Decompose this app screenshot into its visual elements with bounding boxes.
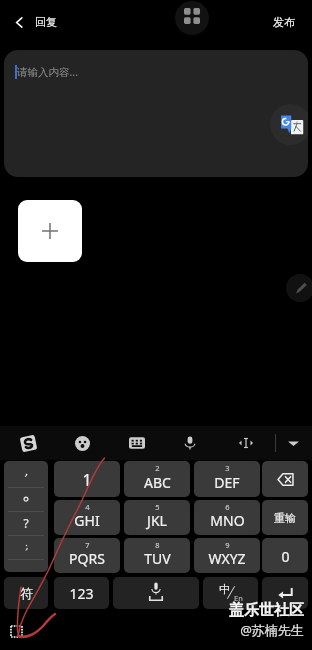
staticText: DEF <box>214 473 240 492</box>
button[interactable]: 4 <box>54 500 120 535</box>
button[interactable]: 3 <box>194 461 260 497</box>
button[interactable]: Hide keyboard <box>276 426 310 460</box>
staticText: 8 <box>155 540 160 550</box>
staticText: TUV <box>144 549 171 568</box>
button[interactable]: 9 <box>194 538 260 573</box>
staticText: PQRS <box>69 549 105 568</box>
button[interactable]: Enter <box>262 577 308 609</box>
staticText: GHI <box>74 511 100 530</box>
button[interactable]: 发布 <box>257 7 312 37</box>
staticText: 0 <box>281 547 290 566</box>
staticText: WXYZ <box>208 549 246 568</box>
staticText: En <box>234 593 243 603</box>
staticText: 发布 <box>273 15 295 29</box>
staticText: JKL <box>147 511 167 530</box>
button[interactable]: 2 <box>124 461 190 497</box>
button[interactable]: Sogou input <box>11 426 45 460</box>
button[interactable]: Emoji <box>65 426 99 460</box>
button[interactable]: Keyboard <box>120 426 154 460</box>
staticText: 7 <box>85 540 90 550</box>
button[interactable]: 6 <box>194 500 260 535</box>
staticText: ? <box>23 515 29 531</box>
staticText: 重输 <box>274 511 296 525</box>
staticText: 中 <box>219 582 230 596</box>
button[interactable]: 中 <box>203 577 258 609</box>
button[interactable]: 5 <box>124 500 190 535</box>
button[interactable]: Backspace <box>262 461 308 497</box>
button[interactable]: Add image <box>18 200 82 262</box>
button[interactable]: ? <box>4 461 48 572</box>
button[interactable]: 回复 <box>0 9 67 35</box>
button[interactable]: 8 <box>124 538 190 573</box>
button[interactable]: 符 <box>4 577 48 609</box>
staticText: 2 <box>155 463 160 473</box>
staticText: 盖乐世社区 <box>229 601 304 620</box>
staticText: 123 <box>69 584 94 603</box>
button[interactable]: Edit <box>286 274 312 302</box>
button[interactable]: 123 <box>54 577 109 609</box>
staticText: 4 <box>85 502 90 512</box>
staticText: MNO <box>210 511 245 530</box>
button[interactable]: 1 <box>54 461 120 497</box>
button[interactable]: Voice input <box>173 426 207 460</box>
button[interactable]: Translate <box>270 104 308 145</box>
button[interactable]: 重输 <box>262 500 308 535</box>
button[interactable]: 7 <box>54 538 120 573</box>
staticText: 回复 <box>35 15 57 29</box>
staticText: 5 <box>155 502 160 512</box>
button[interactable]: Apps <box>175 1 209 35</box>
staticText: 6 <box>225 502 230 512</box>
staticText: 1 <box>82 469 92 491</box>
staticText: @苏楠先生 <box>240 621 304 639</box>
button[interactable]: 请输入内容... <box>4 50 308 177</box>
staticText: 请输入内容... <box>17 65 78 79</box>
staticText: 符 <box>20 585 33 601</box>
staticText: 3 <box>225 463 230 473</box>
button[interactable]: Space <box>113 577 199 609</box>
button[interactable]: Move cursor <box>229 426 263 460</box>
button[interactable]: 0 <box>262 538 308 573</box>
staticText: 9 <box>225 540 230 550</box>
staticText: ABC <box>144 473 171 492</box>
